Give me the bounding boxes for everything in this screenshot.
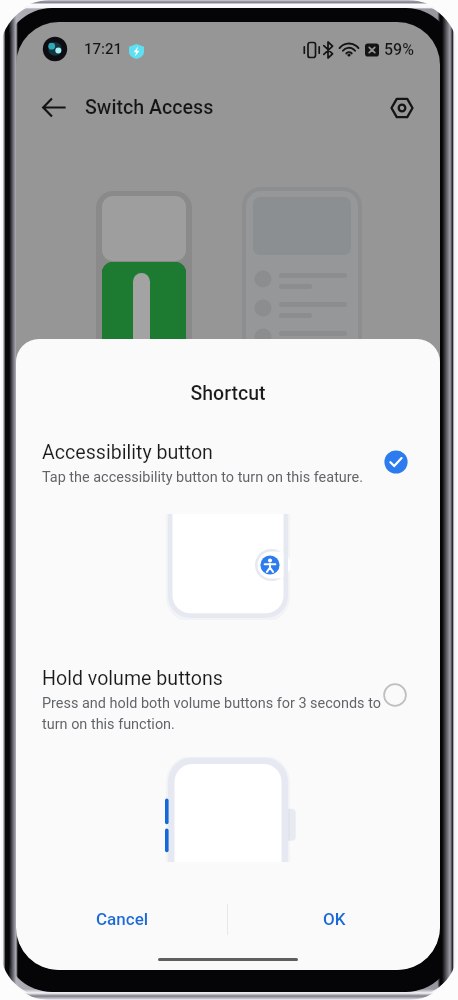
button[interactable]: Hold volume buttons xyxy=(16,661,440,733)
staticText: Accessibility button xyxy=(42,441,213,464)
button[interactable]: OK xyxy=(228,895,440,943)
staticText: 59% xyxy=(384,40,414,59)
staticText: Switch Access xyxy=(85,96,214,119)
staticText: Press and hold both volume buttons for 3… xyxy=(42,695,390,732)
button[interactable]: Accessibility button xyxy=(16,435,440,491)
button[interactable]: Cancel xyxy=(16,895,228,943)
staticText: Cancel xyxy=(96,909,149,929)
button[interactable]: Back xyxy=(33,87,73,127)
staticText: OK xyxy=(323,909,346,929)
staticText: Shortcut xyxy=(16,382,440,405)
staticText: Hold volume buttons xyxy=(42,667,223,690)
staticText: Tap the accessibility button to turn on … xyxy=(42,469,364,486)
staticText: 17:21 xyxy=(84,40,123,58)
button[interactable]: Settings xyxy=(382,88,422,128)
